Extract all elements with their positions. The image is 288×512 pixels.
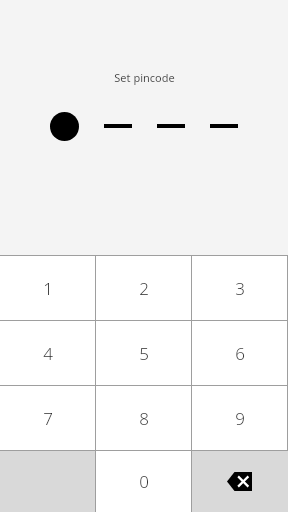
button[interactable]: 4	[0, 321, 95, 385]
button[interactable]: 3	[192, 256, 287, 320]
button[interactable]: 0	[96, 451, 191, 512]
button[interactable]: Backspace	[192, 451, 287, 512]
staticText: 8	[139, 407, 149, 430]
button[interactable]: 9	[192, 386, 287, 450]
staticText: 1	[43, 277, 53, 300]
button[interactable]: 1	[0, 256, 95, 320]
staticText: 4	[43, 342, 53, 365]
button[interactable]: 2	[96, 256, 191, 320]
staticText: 9	[235, 407, 245, 430]
button[interactable]: 6	[192, 321, 287, 385]
staticText: 5	[139, 342, 149, 365]
staticText: 0	[139, 470, 149, 493]
staticText: 7	[43, 407, 53, 430]
staticText: Set pincode	[114, 70, 175, 85]
staticText: 6	[235, 342, 245, 365]
staticText: 3	[235, 277, 245, 300]
staticText: 2	[139, 277, 149, 300]
button[interactable]: 7	[0, 386, 95, 450]
button[interactable]: 5	[96, 321, 191, 385]
button[interactable]: 8	[96, 386, 191, 450]
